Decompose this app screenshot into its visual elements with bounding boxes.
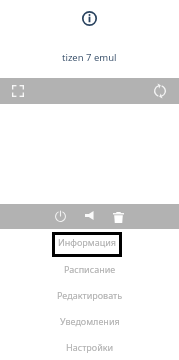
button[interactable]: Refresh [154, 85, 166, 97]
staticText: Уведомления [60, 315, 120, 327]
button[interactable]: Уведомления [0, 308, 179, 334]
button[interactable]: Volume [85, 211, 94, 220]
button[interactable]: Расписание [0, 256, 179, 282]
button[interactable]: Delete [113, 212, 124, 223]
button[interactable]: Редактировать [0, 282, 179, 308]
button[interactable]: Настройки [0, 334, 179, 360]
button[interactable]: Information [76, 5, 103, 32]
staticText: tizen 7 emul [62, 51, 117, 64]
staticText: Информация [58, 236, 116, 248]
staticText: Настройки [66, 341, 114, 353]
button[interactable]: Power [55, 211, 66, 222]
staticText: Расписание [64, 263, 116, 275]
button[interactable]: Fullscreen [12, 85, 24, 97]
staticText: Редактировать [57, 289, 123, 301]
button[interactable]: Информация [52, 232, 122, 257]
